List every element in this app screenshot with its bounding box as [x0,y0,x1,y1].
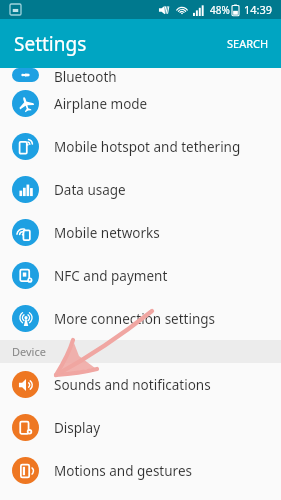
button[interactable]: Display [0,406,281,449]
staticText: Device [12,344,46,359]
button[interactable]: Mobile networks [0,211,281,254]
staticText: Airplane mode [54,95,148,113]
staticText: Mobile hotspot and tethering [54,138,241,156]
staticText: NFC and payment [54,267,168,285]
button[interactable]: More connection settings [0,297,281,340]
button[interactable]: Sounds and notifications [0,363,281,406]
button[interactable]: Mobile hotspot and tethering [0,125,281,168]
staticText: SEARCH [227,36,269,51]
button[interactable]: Bluetooth [0,68,281,82]
staticText: Mobile networks [54,224,160,242]
staticText: Motions and gestures [54,462,192,480]
staticText: More connection settings [54,310,216,328]
button[interactable]: NFC and payment [0,254,281,297]
staticText: Data usage [54,181,126,199]
staticText: Bluetooth [54,68,117,82]
staticText: 48% [210,3,230,17]
button[interactable]: Airplane mode [0,82,281,125]
staticText: Sounds and notifications [54,376,211,394]
button[interactable]: SEARCH [215,24,281,63]
staticText: Settings [14,31,87,57]
button[interactable]: Motions and gestures [0,449,281,492]
staticText: Display [54,419,101,437]
staticText: 14:39 [244,2,273,17]
button[interactable]: Data usage [0,168,281,211]
